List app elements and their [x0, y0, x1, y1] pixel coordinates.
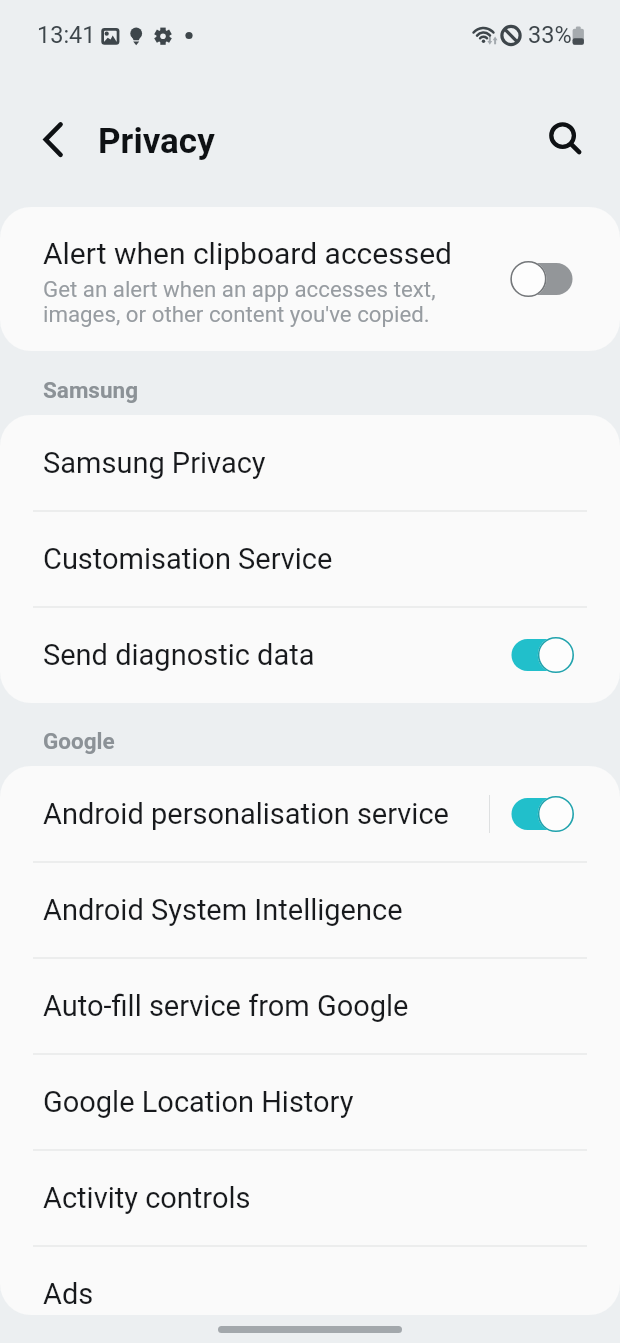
- button[interactable]: Alert when clipboard accessed off: [504, 255, 580, 303]
- staticText: Auto-fill service from Google: [43, 989, 620, 1023]
- button[interactable]: Customisation Service: [0, 511, 620, 607]
- staticText: Google: [43, 728, 115, 754]
- button[interactable]: Navigate up: [26, 113, 80, 167]
- staticText: 33%: [528, 21, 572, 49]
- button[interactable]: Alert when clipboard accessed: [0, 207, 620, 351]
- staticText: Get an alert when an app accesses text, …: [43, 276, 448, 328]
- button[interactable]: Google Location History: [0, 1054, 620, 1150]
- staticText: Samsung Privacy: [43, 446, 620, 480]
- staticText: Send diagnostic data: [43, 638, 504, 672]
- button[interactable]: Send diagnostic data: [0, 607, 620, 703]
- staticText: Samsung: [43, 377, 139, 403]
- staticText: Activity controls: [43, 1181, 620, 1215]
- button[interactable]: Samsung Privacy: [0, 415, 620, 511]
- staticText: Ads: [43, 1277, 620, 1311]
- staticText: Customisation Service: [43, 542, 620, 576]
- button[interactable]: Auto-fill service from Google: [0, 958, 620, 1054]
- button[interactable]: Send diagnostic data on: [504, 631, 580, 679]
- staticText: Android personalisation service: [43, 797, 489, 831]
- button[interactable]: Activity controls: [0, 1150, 620, 1246]
- staticText: Google Location History: [43, 1085, 620, 1119]
- staticText: Privacy: [98, 121, 215, 162]
- staticText: Alert when clipboard accessed: [43, 236, 452, 271]
- button[interactable]: Android personalisation service on: [504, 790, 580, 838]
- button[interactable]: Android System Intelligence: [0, 862, 620, 958]
- staticText: Android System Intelligence: [43, 893, 620, 927]
- button[interactable]: Android personalisation service: [0, 766, 620, 862]
- staticText: 13:41: [37, 21, 96, 49]
- button[interactable]: Ads: [0, 1246, 620, 1315]
- button[interactable]: Search: [536, 109, 590, 163]
